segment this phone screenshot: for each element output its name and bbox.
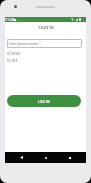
button[interactable]: Recent apps (65, 152, 74, 163)
button[interactable]: Back (17, 152, 26, 163)
staticText: DRIVER (11, 52, 20, 56)
button[interactable]: USER (7, 58, 37, 63)
staticText: USER (11, 59, 18, 63)
button[interactable]: LOG IN (7, 95, 81, 107)
button[interactable]: Enter phone number * (7, 39, 82, 48)
button[interactable]: DRIVER (7, 51, 37, 56)
staticText: Enter phone number * (9, 42, 41, 46)
staticText: LOG IN (38, 99, 50, 104)
staticText: 11:28 (5, 17, 15, 22)
button[interactable]: Home (41, 152, 50, 163)
staticText: SIGN IN (38, 25, 54, 31)
